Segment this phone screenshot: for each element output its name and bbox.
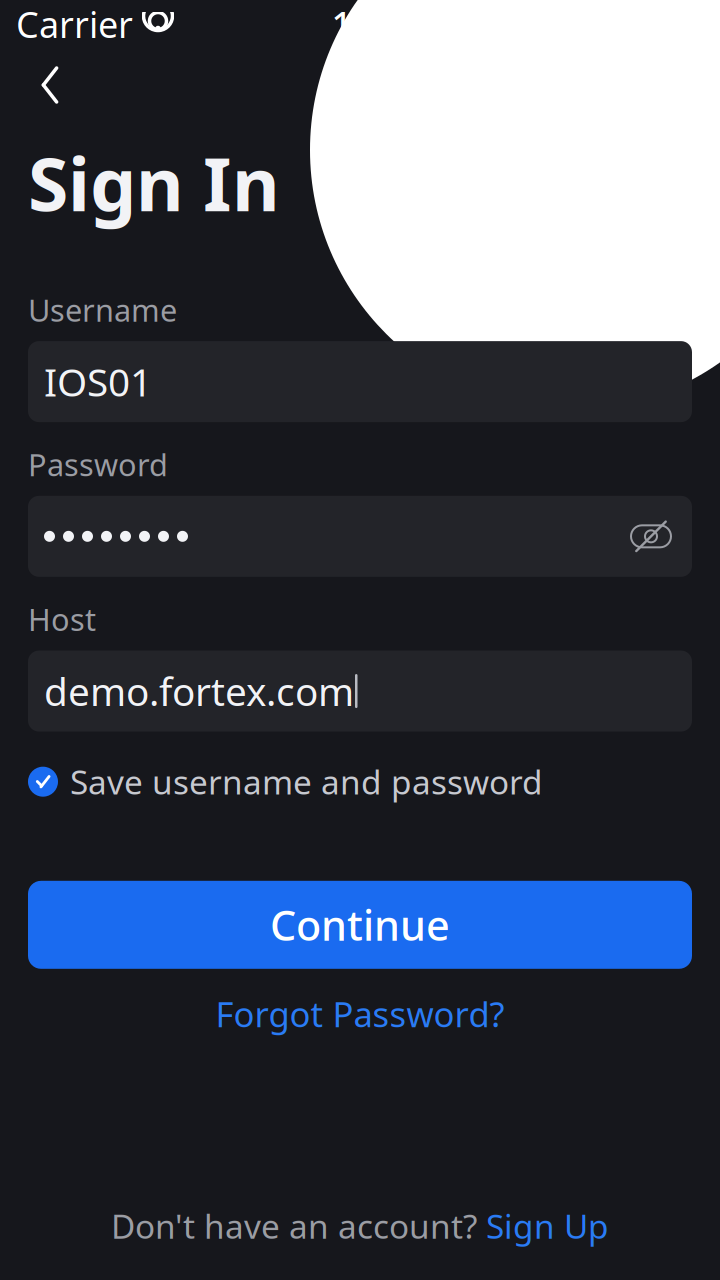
staticText: IOS01 bbox=[44, 356, 152, 407]
button[interactable] bbox=[28, 496, 692, 577]
button[interactable]: Continue bbox=[28, 881, 692, 969]
button[interactable]: demo.fortex.com bbox=[28, 651, 692, 732]
button[interactable]: Show password bbox=[620, 505, 682, 567]
staticText: Forgot Password? bbox=[215, 991, 504, 1037]
staticText: Save username and password bbox=[70, 760, 543, 804]
staticText: Sign Up bbox=[486, 1204, 609, 1248]
button[interactable]: IOS01 bbox=[28, 341, 692, 422]
staticText: Password bbox=[28, 444, 168, 485]
button[interactable]: Sign Up bbox=[486, 1204, 609, 1248]
staticText: demo.fortex.com bbox=[44, 665, 354, 717]
button[interactable]: Save username and password bbox=[28, 760, 543, 804]
staticText: Don't have an account? bbox=[111, 1204, 486, 1248]
staticText: Carrier bbox=[16, 0, 133, 48]
staticText: Host bbox=[28, 599, 96, 639]
staticText: 11:37 AM bbox=[331, 0, 491, 48]
staticText: Username bbox=[28, 289, 177, 330]
staticText: Continue bbox=[270, 897, 450, 952]
button[interactable]: Forgot Password? bbox=[195, 981, 524, 1047]
button[interactable]: Back bbox=[20, 55, 80, 115]
staticText: Sign In bbox=[28, 134, 280, 231]
